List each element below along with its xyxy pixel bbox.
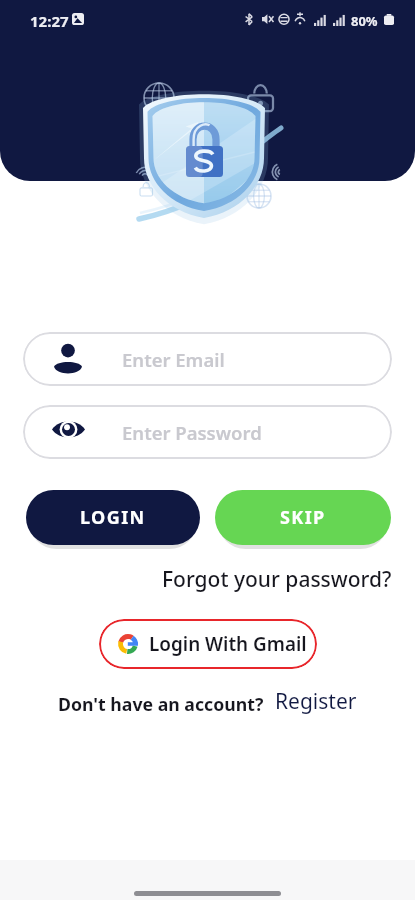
button[interactable]: Enter Password xyxy=(23,405,392,459)
staticText: LOGIN xyxy=(80,505,146,530)
button[interactable]: SKIP xyxy=(215,490,391,545)
staticText: SKIP xyxy=(280,505,326,530)
button[interactable]: Register xyxy=(275,687,357,716)
button[interactable]: LOGIN xyxy=(26,490,200,545)
button[interactable]: Forgot your password? xyxy=(162,565,392,594)
staticText: Enter Password xyxy=(122,420,262,445)
staticText: Don't have an account? xyxy=(58,692,264,716)
staticText: Login With Gmail xyxy=(149,631,307,657)
button[interactable]: Login With Gmail xyxy=(99,619,317,669)
staticText: 80% xyxy=(351,12,378,30)
staticText: Enter Email xyxy=(122,347,225,372)
staticText: 12:27 xyxy=(30,11,69,31)
button[interactable]: Enter Email xyxy=(23,332,392,386)
